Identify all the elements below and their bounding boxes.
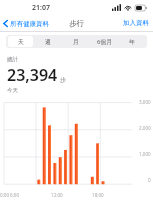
staticText: 18:00 (92, 192, 104, 198)
staticText: 0:00 (0, 192, 10, 198)
button[interactable]: 天 (8, 36, 33, 47)
button[interactable]: 年 (119, 36, 145, 47)
staticText: 1,000 (139, 151, 151, 157)
staticText: 總計 (7, 56, 18, 63)
staticText: 年 (129, 38, 135, 45)
staticText: 今天 (7, 87, 18, 94)
button[interactable]: 週 (35, 36, 61, 47)
staticText: 12:00 (51, 192, 63, 198)
button[interactable]: 月 (63, 36, 89, 47)
staticText: 23,394 (7, 64, 58, 86)
staticText: 0 (148, 177, 151, 183)
staticText: 天 (18, 38, 24, 45)
staticText: 步 (60, 76, 66, 84)
staticText: 週 (45, 38, 51, 45)
staticText: 2,000 (139, 125, 151, 131)
staticText: 6個月 (97, 38, 112, 46)
staticText: 3,000 (139, 99, 151, 105)
staticText: 21:07 (32, 3, 50, 13)
button[interactable]: 所有健康資料 (0, 17, 53, 30)
staticText: 所有健康資料 (10, 20, 49, 28)
staticText: 月 (73, 38, 79, 45)
staticText: 步行 (69, 19, 84, 28)
button[interactable]: 加入資料 (119, 17, 153, 29)
staticText: 6:00 (10, 192, 20, 198)
button[interactable]: 6個月 (91, 36, 117, 47)
staticText: 加入資料 (123, 19, 149, 27)
